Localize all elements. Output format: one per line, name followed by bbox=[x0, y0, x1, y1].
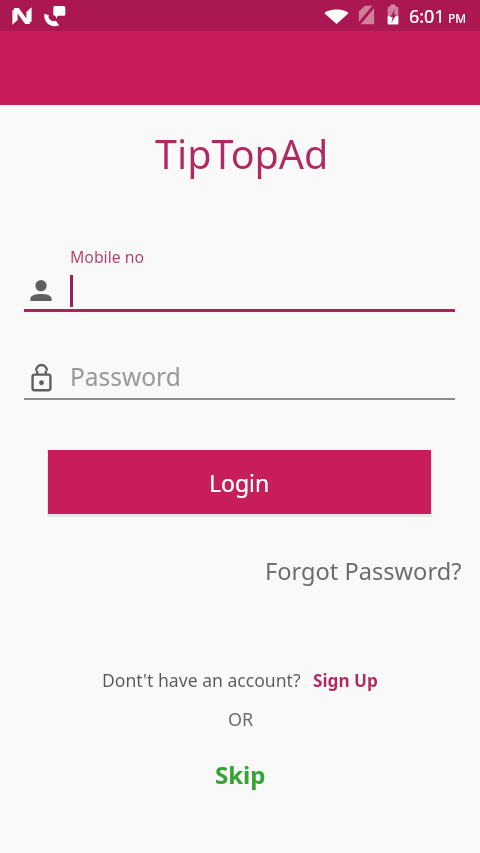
button[interactable]: Skip bbox=[215, 758, 266, 791]
staticText: Login bbox=[209, 467, 270, 498]
staticText: 6:01 bbox=[409, 4, 445, 29]
staticText: TipTopAd bbox=[155, 127, 329, 181]
button[interactable]: Login bbox=[48, 450, 431, 514]
staticText: Sign Up bbox=[313, 669, 378, 692]
staticText: Skip bbox=[215, 758, 266, 791]
staticText: Password bbox=[70, 360, 181, 393]
staticText: OR bbox=[228, 707, 254, 732]
staticText: Mobile no bbox=[70, 246, 145, 268]
button[interactable]: Forgot Password? bbox=[265, 555, 462, 587]
staticText: PM bbox=[448, 10, 467, 26]
button[interactable]: Mobile no input field bbox=[24, 237, 455, 312]
staticText: Forgot Password? bbox=[265, 555, 462, 587]
staticText: Dont't have an account? bbox=[102, 668, 301, 692]
button[interactable]: Sign Up bbox=[313, 669, 378, 692]
button[interactable]: Password input field bbox=[24, 353, 455, 400]
